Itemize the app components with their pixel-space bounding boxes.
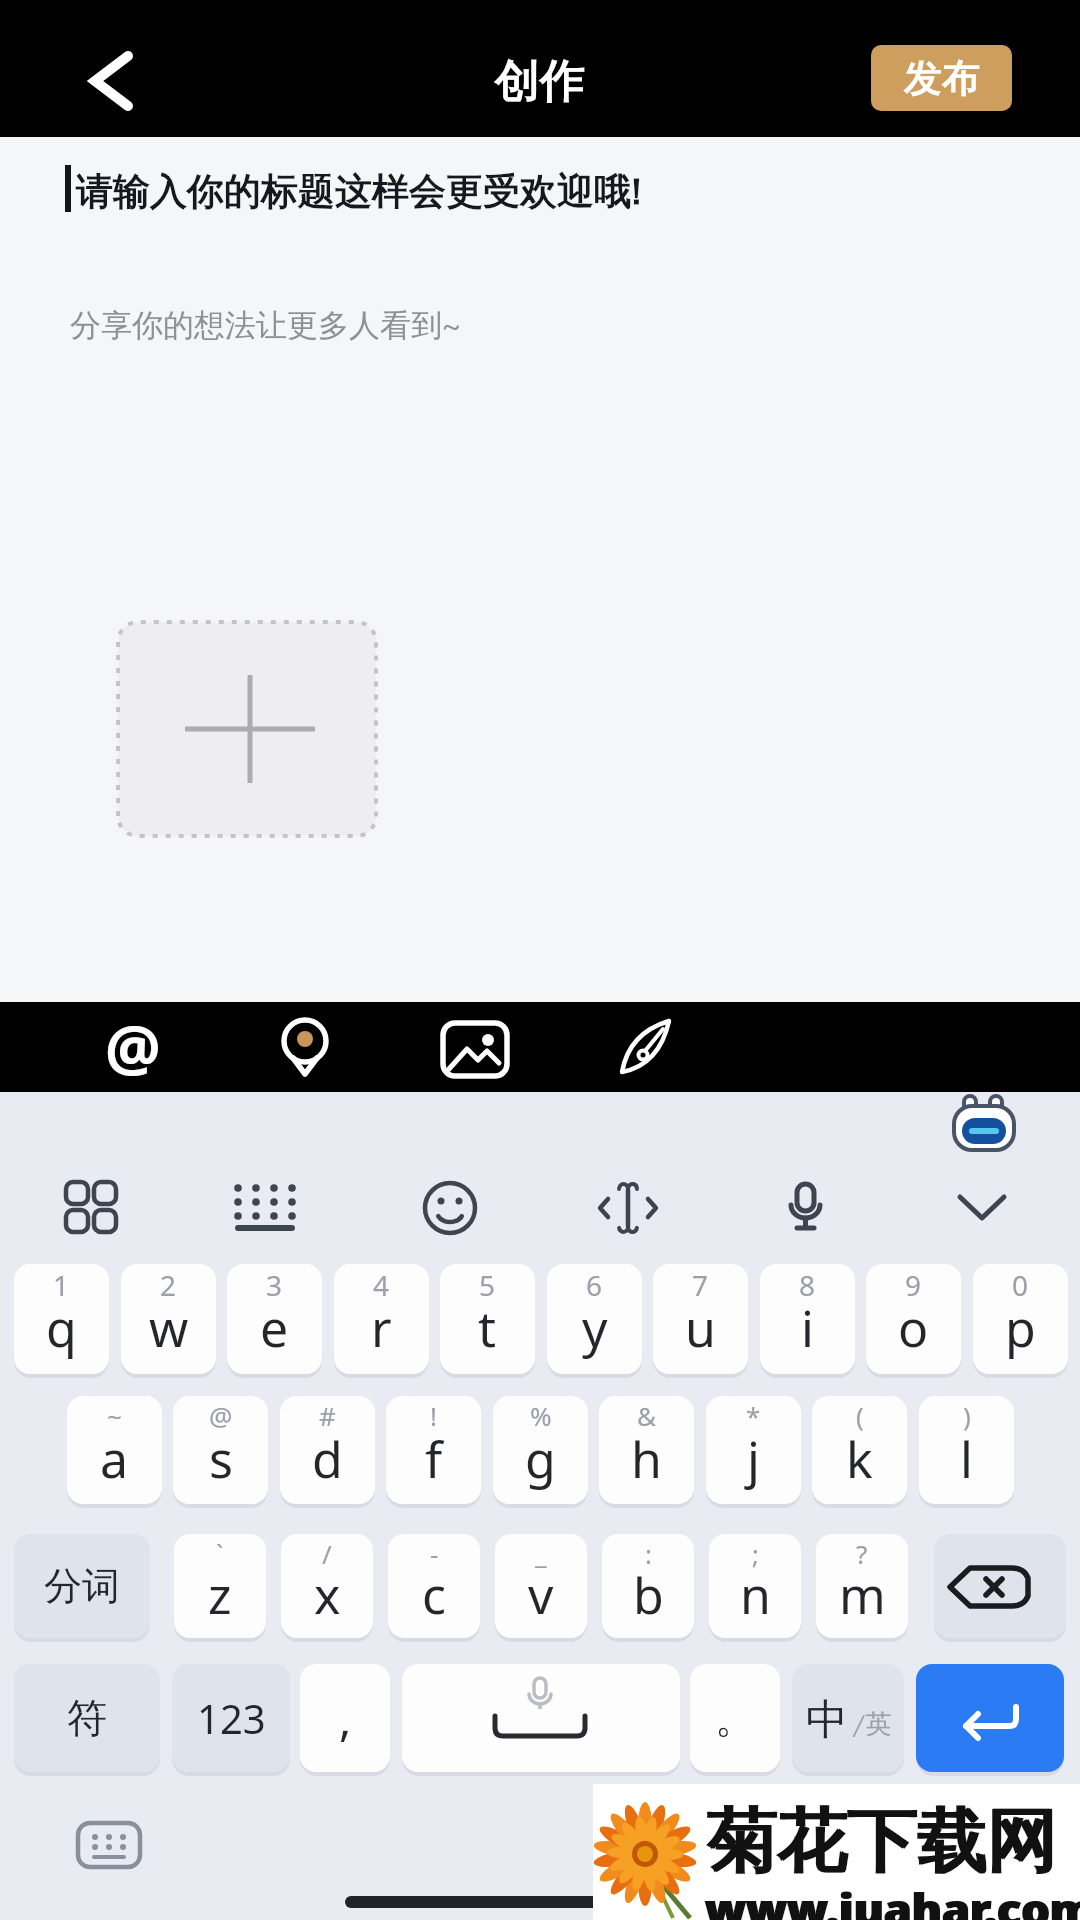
button[interactable]: ) <box>919 1396 1014 1504</box>
button[interactable] <box>593 1180 663 1236</box>
button[interactable]: @ <box>173 1396 268 1504</box>
button[interactable]: 0 <box>973 1264 1068 1374</box>
button[interactable]: 符 <box>14 1664 160 1772</box>
button[interactable]: * <box>706 1396 801 1504</box>
button[interactable]: ` <box>174 1534 266 1638</box>
button[interactable]: 6 <box>547 1264 642 1374</box>
staticText: ( <box>856 1398 864 1433</box>
staticText: 分词 <box>44 1562 120 1610</box>
staticText: www.juahar.com <box>704 1878 1080 1920</box>
staticText: , <box>339 1687 352 1750</box>
button[interactable] <box>435 1007 515 1087</box>
staticText: @ <box>105 1005 161 1089</box>
staticText: 4 <box>373 1266 390 1304</box>
button[interactable] <box>605 1007 685 1087</box>
button[interactable] <box>402 1664 680 1772</box>
staticText: 创作 <box>495 53 585 110</box>
staticText: m <box>839 1561 886 1629</box>
button[interactable]: ( <box>812 1396 907 1504</box>
button[interactable] <box>58 1180 128 1236</box>
button[interactable] <box>228 1180 298 1236</box>
staticText: d <box>312 1425 343 1493</box>
staticText: # <box>319 1398 336 1433</box>
staticText: r <box>371 1294 392 1362</box>
button[interactable]: 1 <box>14 1264 109 1374</box>
staticText: f <box>425 1425 443 1493</box>
staticText: 6 <box>586 1266 603 1304</box>
staticText: @ <box>209 1398 233 1433</box>
staticText: ? <box>856 1536 868 1571</box>
staticText: % <box>530 1398 552 1433</box>
button[interactable]: # <box>280 1396 375 1504</box>
button[interactable]: / <box>281 1534 373 1638</box>
button[interactable]: 发布 <box>871 45 1012 111</box>
staticText: ~ <box>107 1398 122 1433</box>
staticText: / <box>322 1536 332 1571</box>
staticText: o <box>898 1294 929 1362</box>
button[interactable]: ! <box>386 1396 481 1504</box>
button[interactable]: 4 <box>334 1264 429 1374</box>
button[interactable] <box>60 25 150 120</box>
staticText: ! <box>430 1398 437 1433</box>
staticText: 符 <box>67 1693 107 1743</box>
button[interactable] <box>947 1180 1017 1236</box>
staticText: 中 <box>806 1694 848 1747</box>
staticText: y <box>582 1294 608 1362</box>
button[interactable]: : <box>602 1534 694 1638</box>
staticText: ; <box>752 1536 759 1571</box>
staticText: 菊花下载网 <box>709 1797 1059 1885</box>
button[interactable]: & <box>599 1396 694 1504</box>
staticText: z <box>208 1561 232 1629</box>
staticText: n <box>740 1561 771 1629</box>
staticText: 请输入你的标题这样会更受欢迎哦! <box>76 168 643 215</box>
staticText: i <box>801 1294 814 1362</box>
button[interactable]: _ <box>495 1534 587 1638</box>
button[interactable]: 3 <box>227 1264 322 1374</box>
staticText: g <box>525 1425 556 1493</box>
staticText: 菊花下载网 <box>707 1797 1057 1885</box>
staticText: 。 <box>715 1693 755 1743</box>
button[interactable]: , <box>300 1664 390 1772</box>
staticText: ) <box>963 1398 971 1433</box>
button[interactable] <box>70 1815 148 1875</box>
button[interactable] <box>916 1664 1064 1772</box>
button[interactable] <box>116 620 378 838</box>
staticText: & <box>637 1398 657 1433</box>
staticText: : <box>645 1536 652 1571</box>
staticText: j <box>747 1425 760 1493</box>
button[interactable]: ? <box>816 1534 908 1638</box>
button[interactable]: % <box>493 1396 588 1504</box>
button[interactable]: 8 <box>760 1264 855 1374</box>
staticText: e <box>260 1294 289 1362</box>
button[interactable]: @ <box>93 1002 173 1092</box>
staticText: * <box>746 1398 761 1433</box>
staticText: 7 <box>692 1266 709 1304</box>
staticText: 123 <box>197 1691 266 1745</box>
staticText: s <box>209 1425 233 1493</box>
button[interactable]: 分词 <box>14 1534 150 1638</box>
button[interactable] <box>950 1094 1022 1154</box>
staticText: 2 <box>160 1266 177 1304</box>
button[interactable]: 9 <box>866 1264 961 1374</box>
button[interactable]: 。 <box>690 1664 780 1772</box>
button[interactable]: 123 <box>172 1664 290 1772</box>
button[interactable]: 7 <box>653 1264 748 1374</box>
button[interactable]: 中 <box>792 1664 904 1772</box>
staticText: 1 <box>53 1266 70 1304</box>
button[interactable]: 2 <box>121 1264 216 1374</box>
button[interactable] <box>415 1180 485 1236</box>
button[interactable]: ~ <box>67 1396 162 1504</box>
staticText: 9 <box>905 1266 922 1304</box>
staticText: w <box>149 1294 189 1362</box>
staticText: /英 <box>852 1708 892 1741</box>
button[interactable] <box>265 1007 345 1087</box>
staticText: 5 <box>479 1266 496 1304</box>
button[interactable] <box>770 1180 840 1236</box>
button[interactable]: - <box>388 1534 480 1638</box>
staticText: x <box>314 1561 341 1629</box>
button[interactable]: ; <box>709 1534 801 1638</box>
button[interactable]: 5 <box>440 1264 535 1374</box>
staticText: 8 <box>799 1266 816 1304</box>
button[interactable] <box>934 1534 1066 1638</box>
staticText: b <box>633 1561 664 1629</box>
